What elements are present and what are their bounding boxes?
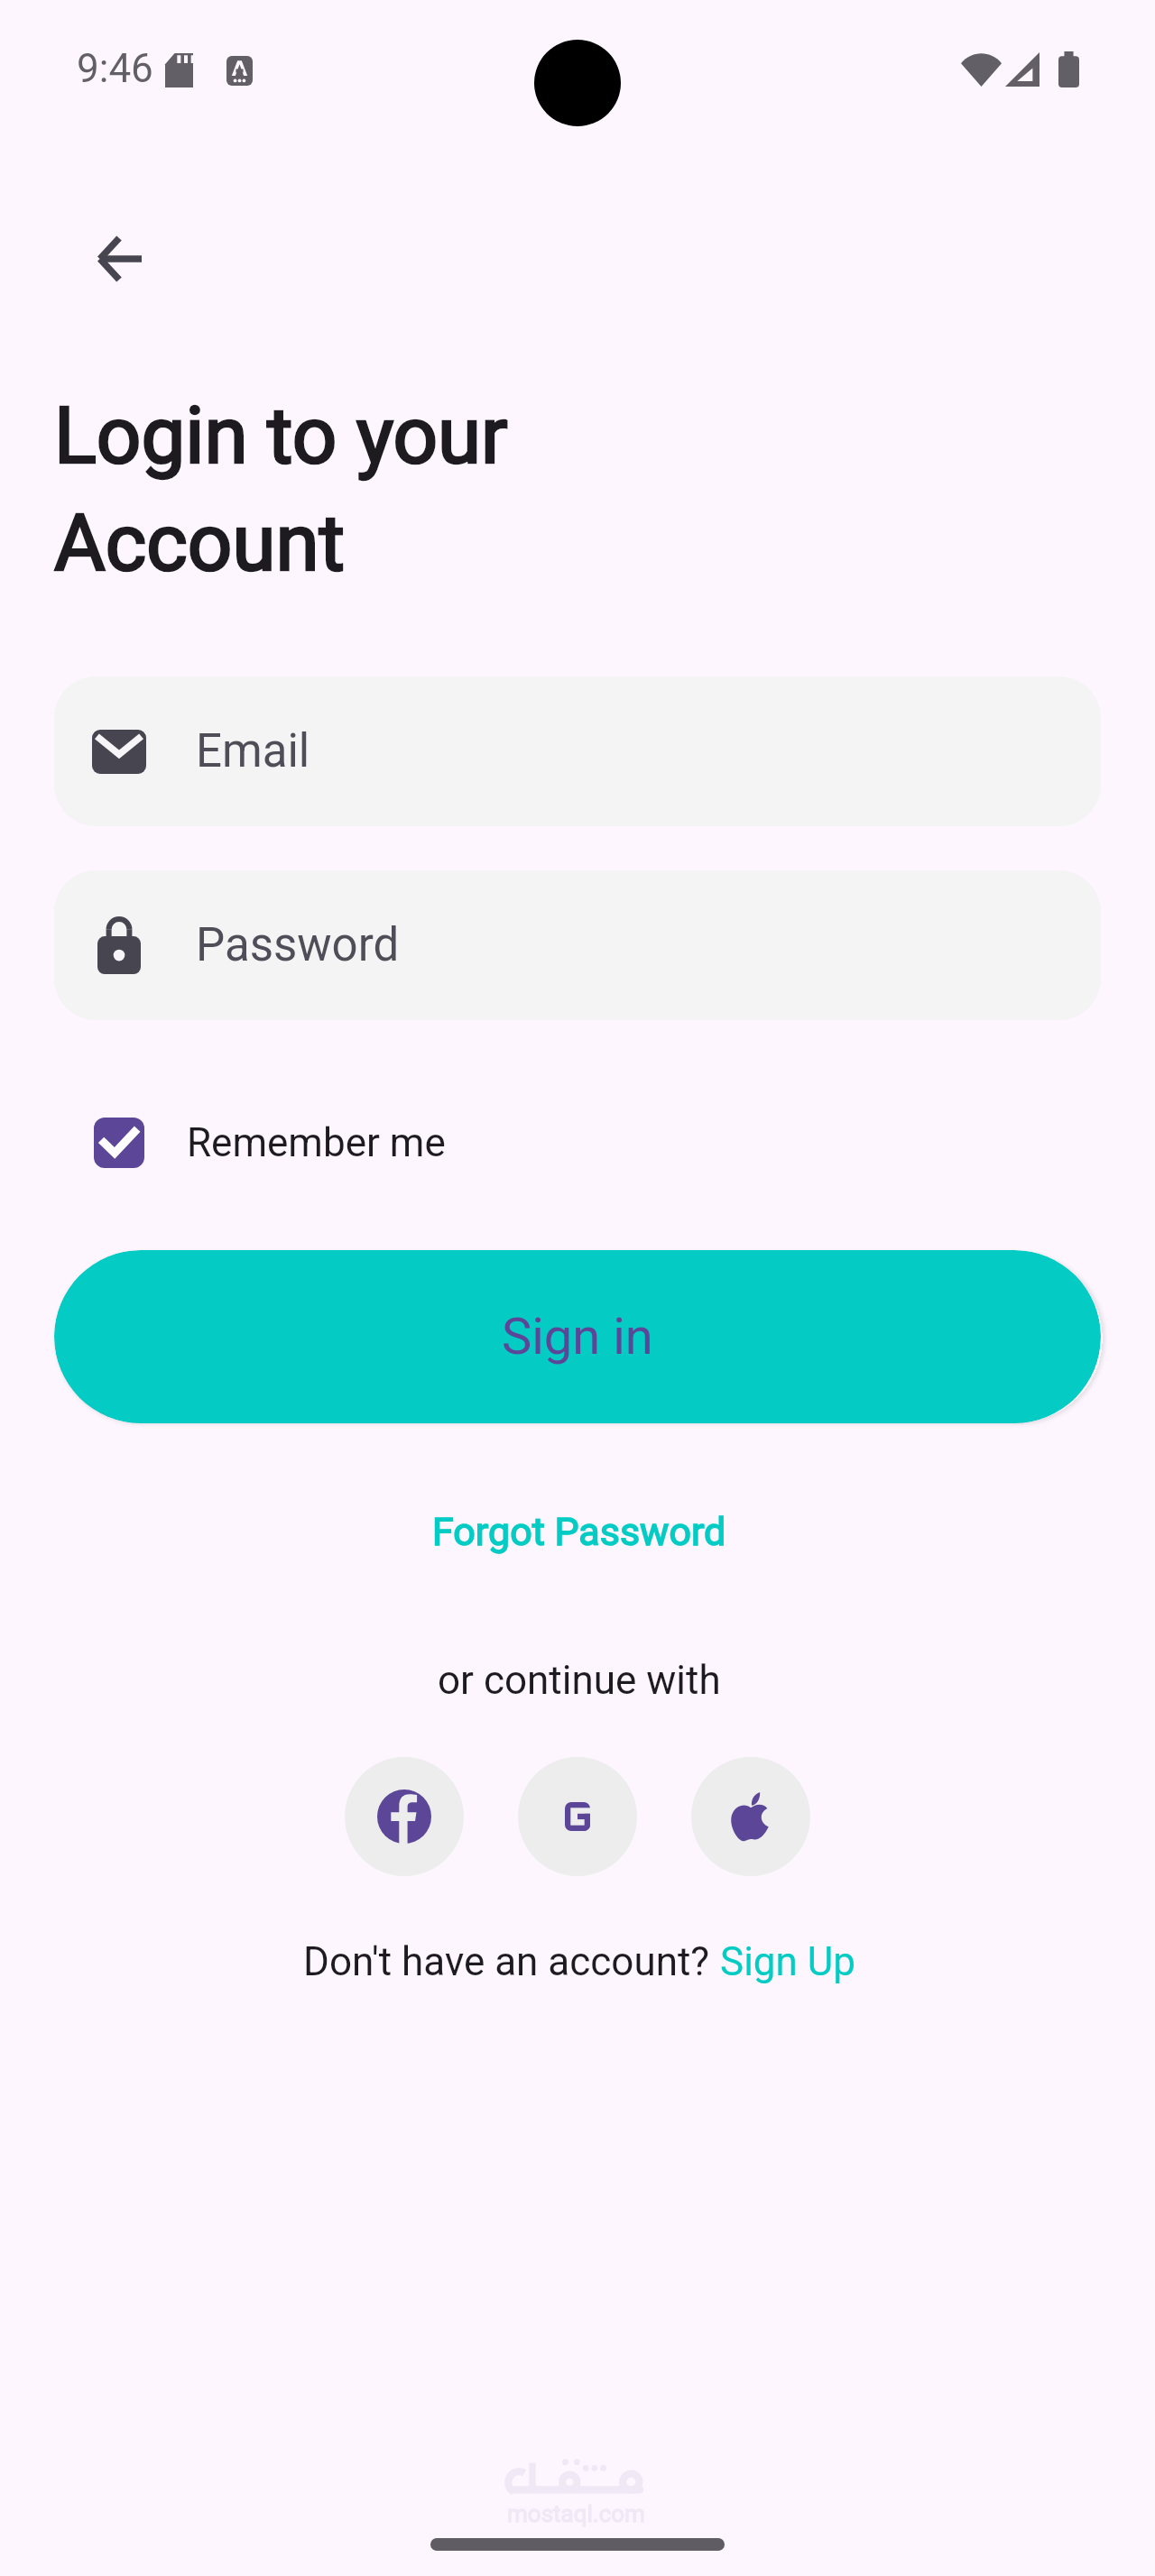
button[interactable]: Sign Up (720, 1938, 855, 1985)
staticText: or continue with (438, 1657, 721, 1704)
staticText: Login to your Account (54, 390, 508, 589)
button[interactable]: Sign in with Apple (691, 1757, 810, 1876)
staticText: Don't have an account? (303, 1938, 720, 1985)
staticText: Password (196, 918, 400, 972)
button[interactable]: Password (54, 870, 1101, 1020)
staticText: Forgot Password (432, 1509, 726, 1554)
button[interactable]: Email (54, 676, 1101, 826)
button[interactable]: Remember me (94, 1118, 446, 1168)
button[interactable]: Sign in with Facebook (345, 1757, 464, 1876)
staticText: Sign in (502, 1307, 653, 1366)
button[interactable]: Forgot Password (418, 1502, 741, 1561)
staticText: 9:46 (77, 45, 153, 92)
button[interactable]: Sign in (54, 1250, 1101, 1423)
staticText: Email (196, 724, 310, 778)
staticText: Remember me (187, 1119, 446, 1166)
staticText: Sign Up (720, 1938, 855, 1985)
button[interactable]: Sign in with Google (518, 1757, 637, 1876)
staticText: mostaql.com (507, 2500, 645, 2527)
button[interactable]: Back (65, 205, 173, 313)
